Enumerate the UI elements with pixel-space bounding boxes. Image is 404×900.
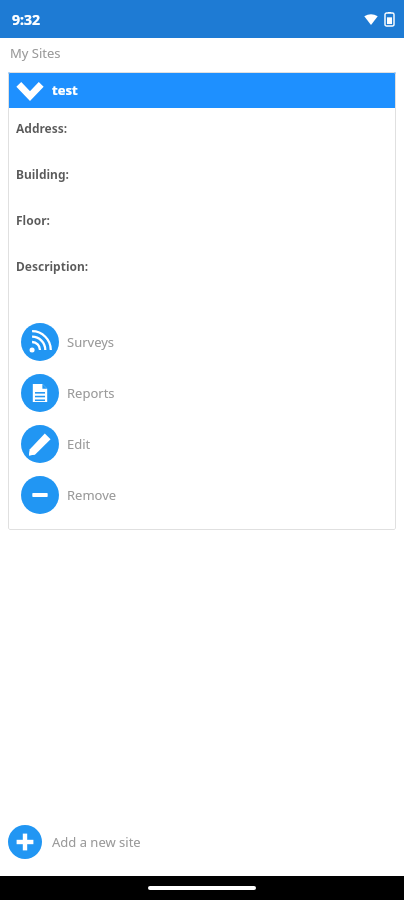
button[interactable]: Collapse site: [8, 72, 396, 108]
staticText: Floor:: [16, 212, 50, 228]
staticText: test: [52, 81, 78, 99]
staticText: Add a new site: [52, 833, 141, 851]
staticText: Edit: [67, 435, 91, 453]
staticText: Description:: [16, 258, 89, 274]
staticText: My Sites: [10, 44, 61, 62]
button[interactable]: Remove: [8, 469, 396, 520]
staticText: 9:32: [12, 10, 40, 29]
button[interactable]: Add a new site: [0, 818, 404, 866]
other: Collapse site: [16, 80, 44, 100]
staticText: Building:: [16, 166, 69, 182]
staticText: Remove: [67, 486, 117, 504]
button[interactable]: Reports: [8, 367, 396, 418]
button[interactable]: Edit: [8, 418, 396, 469]
staticText: Address:: [16, 120, 68, 136]
button[interactable]: Surveys: [8, 316, 396, 367]
other: Add a new site: [8, 825, 42, 859]
staticText: Reports: [67, 384, 115, 402]
staticText: Surveys: [67, 333, 115, 351]
